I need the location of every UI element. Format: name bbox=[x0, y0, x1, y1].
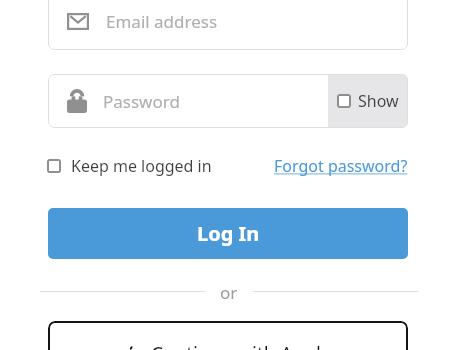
button[interactable]: Keep me logged in bbox=[47, 155, 212, 177]
button[interactable]: Password bbox=[48, 74, 328, 128]
staticText: Show bbox=[358, 90, 399, 112]
other: Password bbox=[67, 89, 87, 113]
staticText: Email address bbox=[106, 10, 218, 33]
staticText: Forgot password? bbox=[274, 155, 408, 177]
button[interactable]: Email bbox=[48, 0, 408, 50]
button[interactable]: Forgot password? bbox=[274, 155, 408, 177]
staticText: Keep me logged in bbox=[71, 155, 212, 177]
button[interactable]: Show bbox=[328, 74, 408, 128]
button[interactable]: Continue with Apple bbox=[48, 321, 408, 350]
button[interactable]: Log In bbox=[48, 208, 408, 259]
staticText: Log In bbox=[197, 220, 260, 247]
staticText: Continue with Apple bbox=[151, 341, 332, 350]
other: Email bbox=[67, 13, 89, 30]
staticText: or bbox=[220, 281, 238, 301]
staticText: Password bbox=[103, 90, 180, 113]
